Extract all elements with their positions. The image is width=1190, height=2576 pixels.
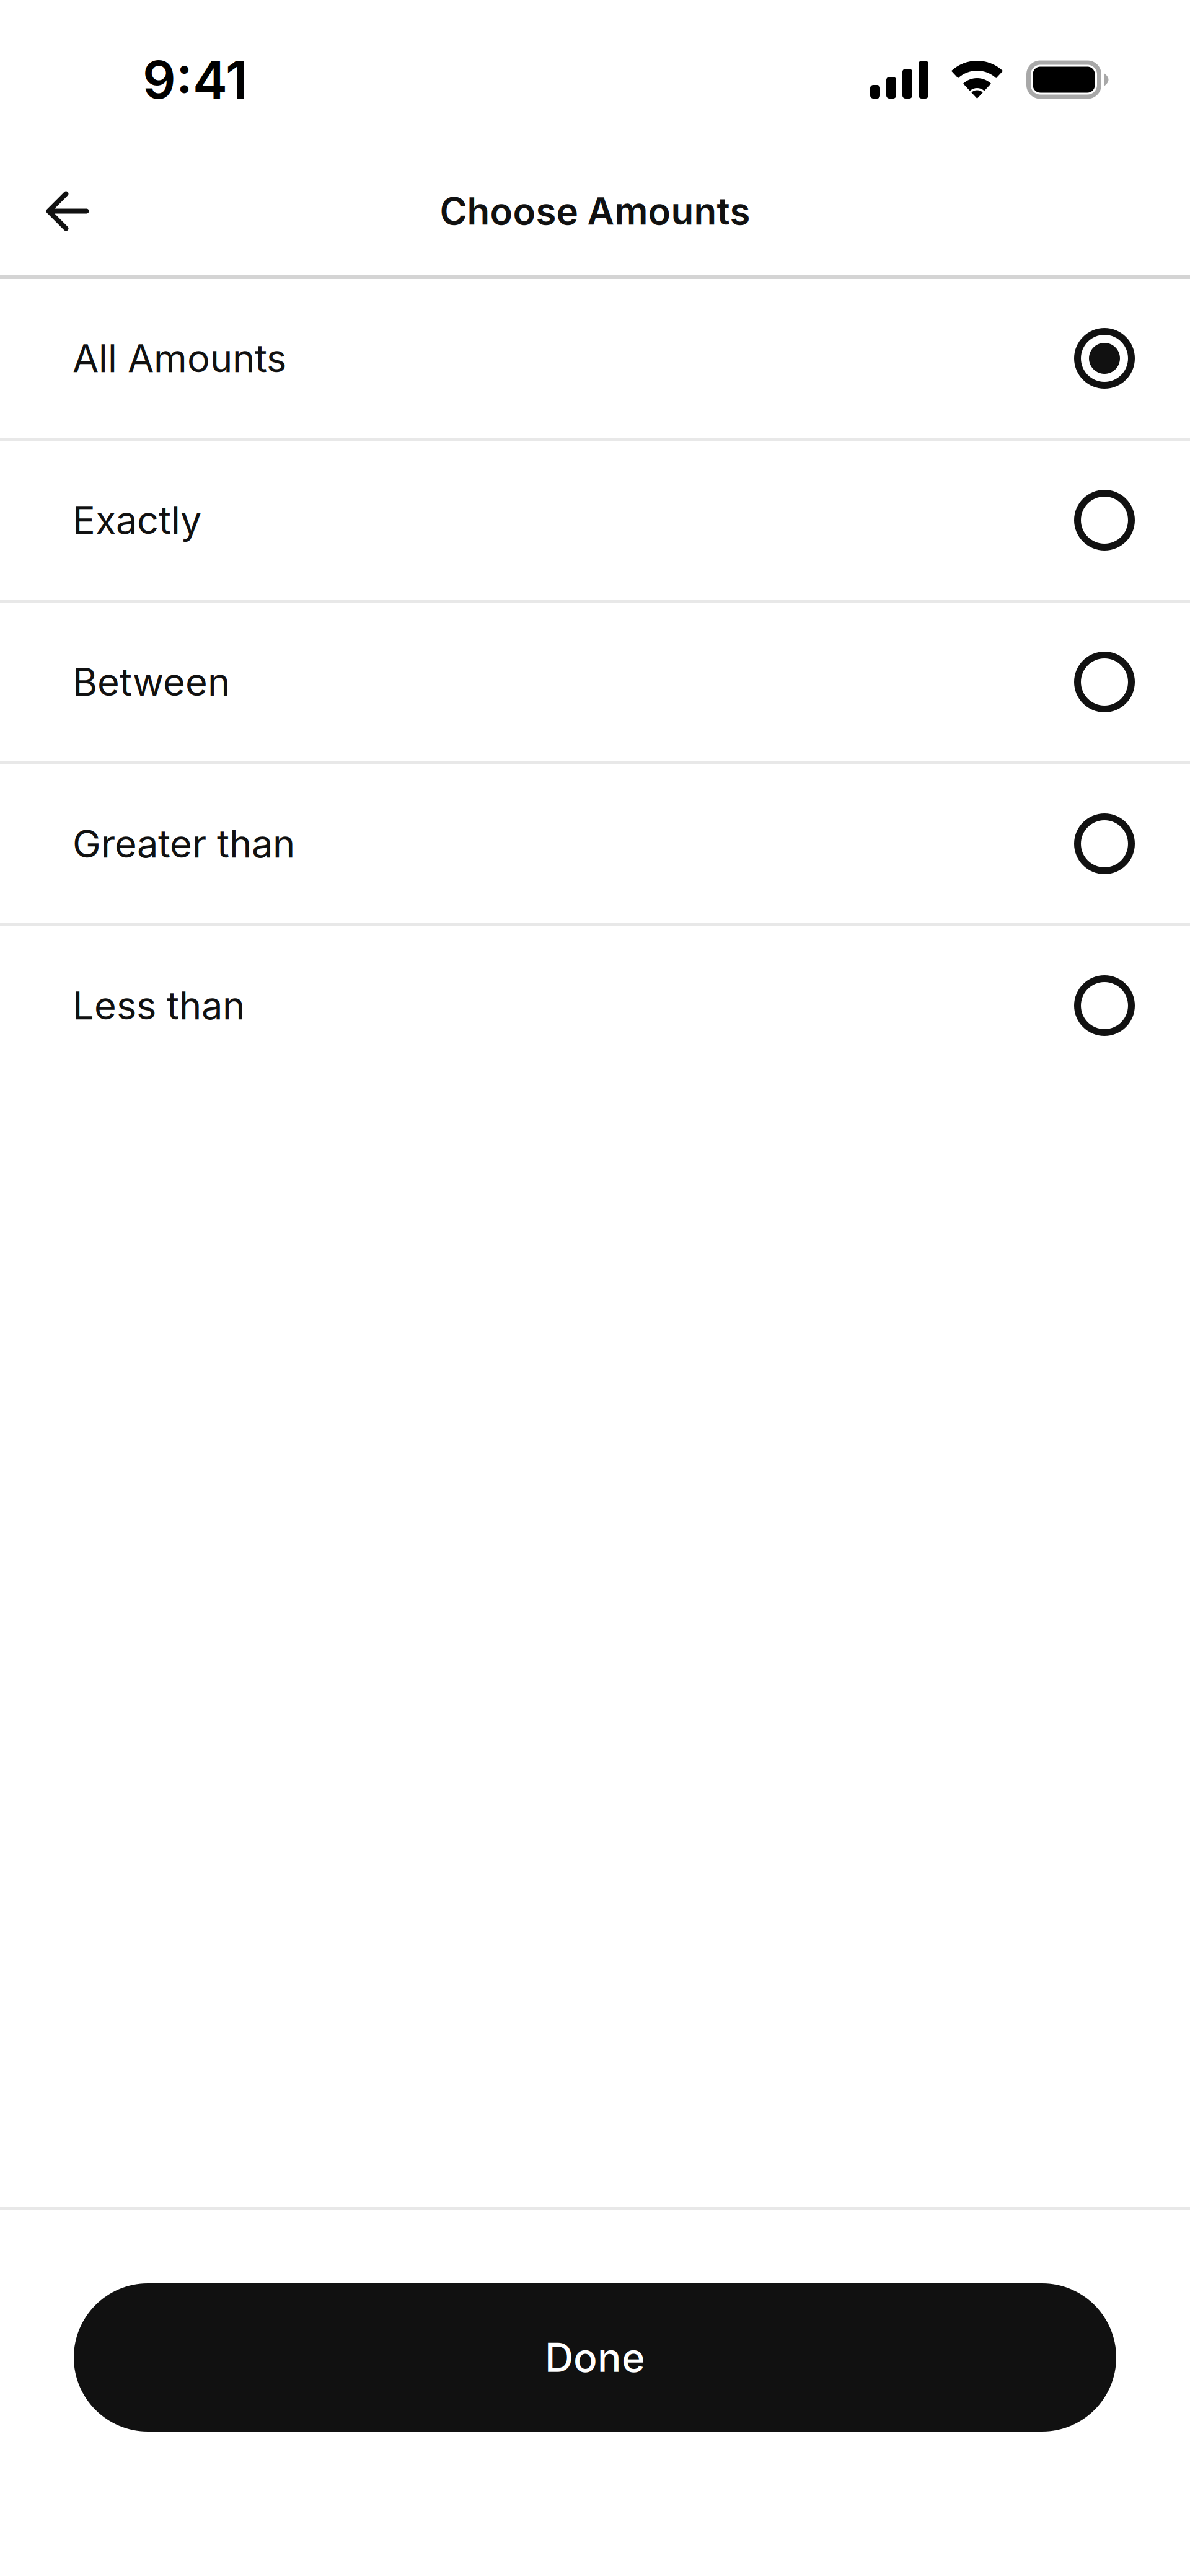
staticText: Between — [73, 659, 230, 705]
button[interactable]: Exactly — [0, 441, 1190, 600]
button[interactable]: Back — [21, 165, 114, 258]
button[interactable]: Less than — [0, 926, 1190, 1085]
staticText: Less than — [73, 983, 245, 1029]
button[interactable]: Between — [0, 603, 1190, 761]
button[interactable]: Done — [74, 2283, 1116, 2432]
staticText: Done — [545, 2333, 645, 2381]
staticText: All Amounts — [73, 335, 286, 381]
staticText: 9:41 — [143, 48, 248, 111]
button[interactable]: All Amounts — [0, 279, 1190, 438]
staticText: Choose Amounts — [440, 189, 750, 234]
staticText: Greater than — [73, 821, 295, 867]
staticText: Exactly — [73, 497, 201, 543]
button[interactable]: Greater than — [0, 764, 1190, 923]
